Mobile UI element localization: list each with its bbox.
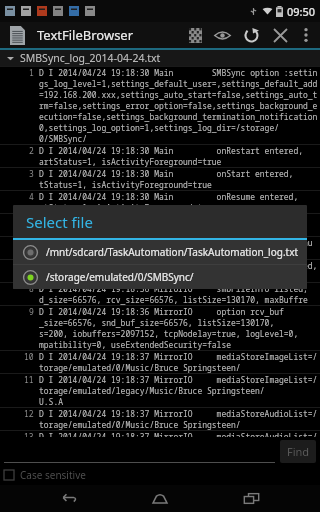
staticText: D I 2014/04/24 19:18:36 MirrorIO smbFile… [39, 283, 320, 294]
button[interactable]: Refresh [236, 22, 266, 48]
staticText: 3 [29, 168, 34, 179]
staticText: gs_log_level=1,settings_default_user=,se… [39, 78, 320, 89]
staticText: D I 2014/04/24 19:18:30 Main onStart ent… [39, 168, 320, 179]
staticText: 09:50 [287, 4, 316, 19]
button[interactable]: SMBSync_log_2014-04-24.txt [0, 50, 320, 66]
staticText: D I 2014/04/24 19:18:35 Main startSmbSyn… [39, 260, 320, 271]
staticText: D I 2014/04/24 19:18:37 MirrorIO mediaSt… [39, 374, 320, 385]
staticText: 0,settings_log_option=1,settings_log_dir… [39, 122, 320, 133]
button[interactable]: Home [138, 485, 182, 512]
button[interactable]: More options [294, 23, 318, 47]
button[interactable]: Encoding [182, 22, 208, 48]
button[interactable]: Close [266, 22, 294, 48]
staticText: U.S.A [39, 396, 63, 407]
button[interactable] [4, 439, 275, 463]
staticText: _size=66576, snd_buf_size=66576, listSiz… [39, 317, 320, 328]
staticText: /storage/emulated/0/SMBSync/SMBSync_log_… [46, 270, 307, 284]
staticText: D I 2014/04/24 19:18:31 Main onCreate en… [39, 214, 320, 225]
staticText: 5 [29, 214, 34, 225]
staticText: /mnt/sdcard/TaskAutomation/TaskAutomatio… [46, 245, 299, 259]
button[interactable]: /mnt/sdcard/TaskAutomation/TaskAutomatio… [13, 240, 307, 264]
staticText: D I 2014/04/24 19:18:37 MirrorIO mediaSt… [39, 431, 320, 437]
staticText: torage/emulated/0/Music/Bruce Springstee… [39, 419, 320, 430]
staticText: 13 [24, 431, 34, 437]
staticText: artStatus=1, isActivityForeground=true [39, 156, 222, 167]
staticText: SMBSync_log_2014-04-24.txt [20, 51, 161, 65]
staticText: ntered, isActivityForeground=true [39, 248, 198, 259]
button[interactable]: Recent apps [229, 485, 273, 512]
staticText: D I 2014/04/24 19:18:30 Main SMBSync opt… [39, 67, 318, 78]
staticText: 12 [24, 408, 34, 419]
staticText: 6 [29, 237, 34, 248]
staticText: 10 [24, 351, 34, 362]
staticText: 4 [29, 191, 34, 202]
staticText: syncProfile=null, syncAuto=false [39, 271, 193, 282]
button[interactable]: Case sensitive [4, 465, 320, 485]
button[interactable]: /storage/emulated/0/SMBSync/SMBSync_log_… [13, 265, 307, 289]
staticText: 11 [24, 374, 34, 385]
staticText: d_size=66576, rcv_size=66576, listSize=1… [39, 294, 308, 305]
staticText: mpatibility=0, useExtendedSecurity=false [39, 339, 231, 350]
button[interactable]: View [208, 22, 236, 48]
staticText: Select file [26, 212, 93, 232]
staticText: s=200, iobuffers=2097152, tcpNodelay=tru… [39, 328, 320, 339]
staticText: 8 [29, 283, 34, 294]
staticText: rm=false,settings_error_option=false,set… [39, 100, 320, 111]
button[interactable]: Find [280, 440, 316, 463]
staticText: torage/emulated/0/Music/Bruce Springstee… [39, 362, 320, 373]
button[interactable]: Back [47, 485, 91, 512]
staticText: tStatus=1, isActivityForeground=true [39, 179, 212, 190]
staticText: Case sensitive [20, 468, 86, 482]
staticText: D I 2014/04/24 19:18:36 MirrorIO option … [39, 306, 284, 317]
staticText: =192.168.200.xxx,settings_auto_start=fal… [39, 89, 320, 100]
staticText: TextFileBrowser [37, 26, 134, 44]
staticText: torage/emulated/legacy/Music/Bruce Sprin… [39, 385, 320, 396]
staticText: tivityForeground=true, buildType=release [39, 225, 231, 236]
staticText: ecution=false,settings_background_termin… [39, 111, 320, 122]
staticText: D I 2014/04/24 19:18:30 Main onRestart e… [39, 145, 320, 156]
staticText: 0/SMBSync/ [39, 133, 87, 144]
staticText: D I 2014/04/24 19:18:37 MirrorIO mediaSt… [39, 351, 320, 362]
staticText: D I 2014/04/24 19:18:37 MirrorIO mediaSt… [39, 408, 320, 419]
staticText: 7 [29, 260, 34, 271]
staticText: rtStatus=1, isActivityForeground=true [39, 202, 217, 213]
staticText: 2 [29, 145, 34, 156]
staticText: D I 2014/04/24 19:18:30 Main onResume en… [39, 191, 320, 202]
staticText: 1 [29, 67, 34, 78]
staticText: 9 [29, 306, 34, 317]
staticText: Find [287, 444, 310, 459]
staticText: D I 2014/04/24 19:18:33 Main onPrepareOp… [39, 237, 320, 248]
